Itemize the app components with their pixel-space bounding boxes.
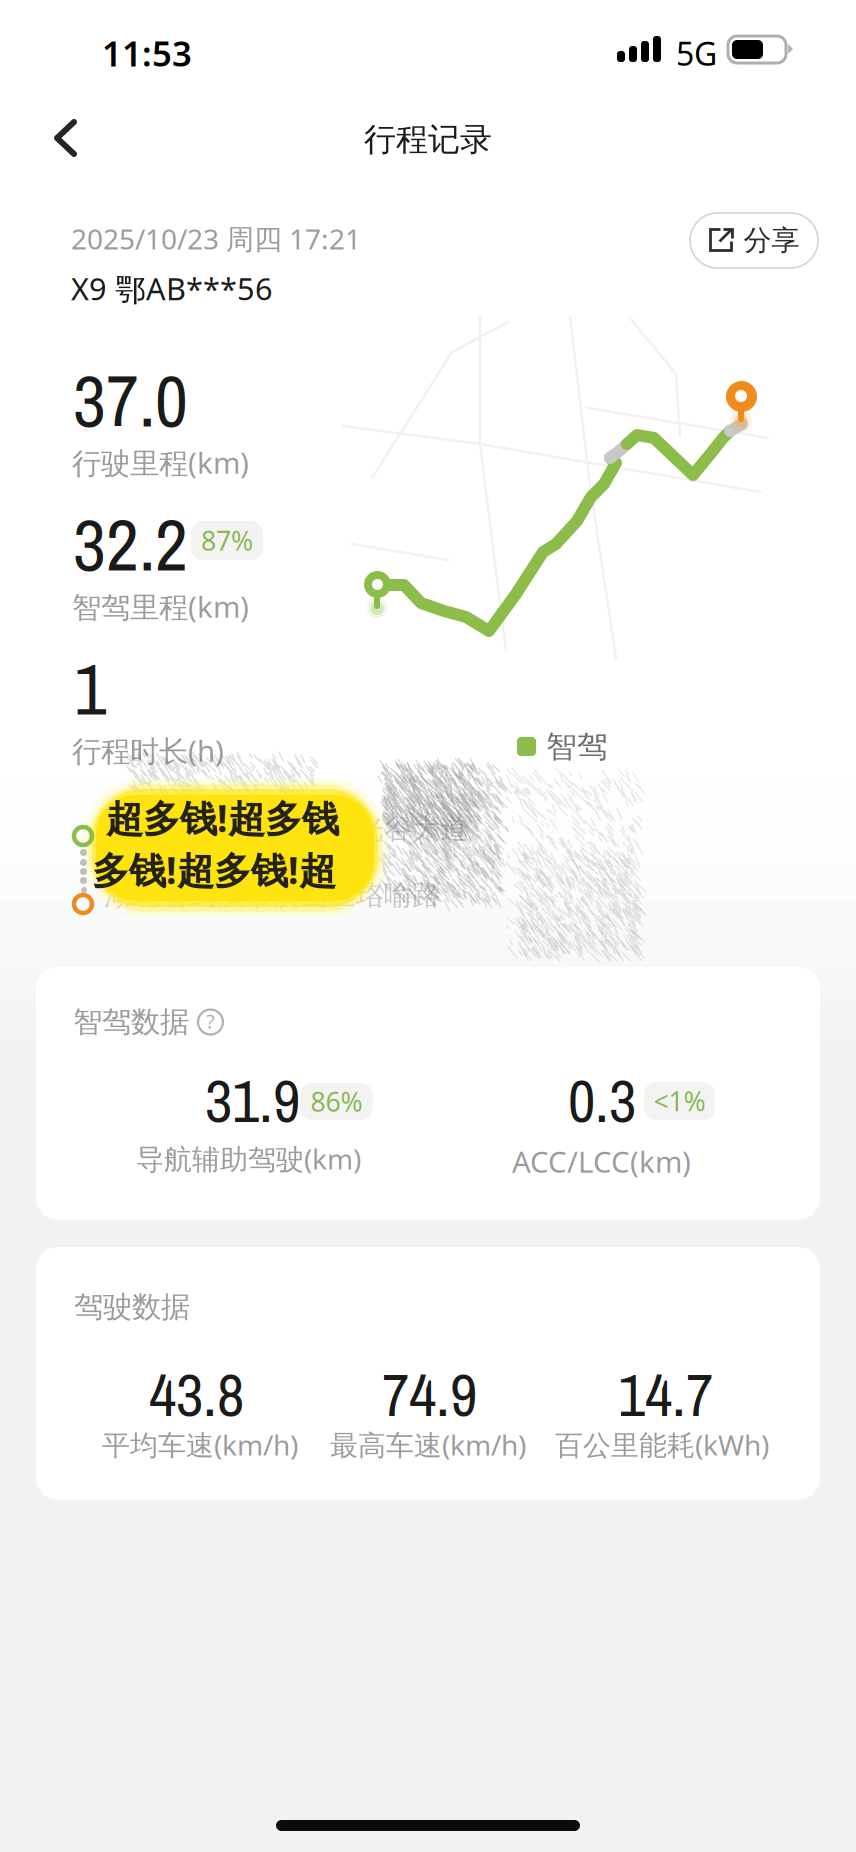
staticText: 最高车速(km/h) <box>330 1426 526 1463</box>
staticText: 1 <box>74 640 107 737</box>
staticText: 37.0 <box>73 352 188 449</box>
staticText: 平均车速(km/h) <box>102 1426 298 1463</box>
staticText: ACC/LCC(km) <box>512 1142 691 1181</box>
staticText: 11:53 <box>102 30 192 76</box>
staticText: ? <box>206 1008 215 1034</box>
staticText: 多钱!超多钱!超 <box>92 845 336 895</box>
staticText: 2025/10/23 周四 17:21 <box>71 220 361 257</box>
staticText: 31.9 <box>205 1060 300 1141</box>
staticText: 行程时长(h) <box>72 731 224 770</box>
staticText: 智驾 <box>546 728 608 766</box>
staticText: 0.3 <box>568 1060 636 1141</box>
staticText: 14.7 <box>618 1354 713 1435</box>
staticText: 43.8 <box>149 1354 244 1435</box>
staticText: 86% <box>310 1084 362 1119</box>
staticText: 87% <box>201 523 253 558</box>
staticText: 行程记录 <box>364 120 492 159</box>
staticText: 驾驶数据 <box>74 1289 190 1325</box>
button[interactable]: Back <box>30 98 101 178</box>
staticText: 湖北省武汉市江夏区光谷大道 <box>104 812 468 846</box>
staticText: 32.2 <box>73 496 188 593</box>
staticText: 湖北省武汉市洪山区珞喻路 <box>104 878 440 912</box>
staticText: 智驾数据 <box>73 1004 189 1040</box>
button[interactable]: 分享 <box>690 213 818 268</box>
staticText: 分享 <box>743 223 799 258</box>
staticText: 超多钱!超多钱 <box>106 793 339 843</box>
staticText: X9 鄂AB***56 <box>71 268 273 309</box>
staticText: 行驶里程(km) <box>72 443 249 482</box>
staticText: 智驾里程(km) <box>72 587 249 626</box>
staticText: 74.9 <box>382 1354 477 1435</box>
staticText: <1% <box>653 1083 705 1119</box>
staticText: 5G <box>676 32 717 74</box>
staticText: 百公里能耗(kWh) <box>555 1426 769 1463</box>
staticText: 导航辅助驾驶(km) <box>136 1140 361 1177</box>
